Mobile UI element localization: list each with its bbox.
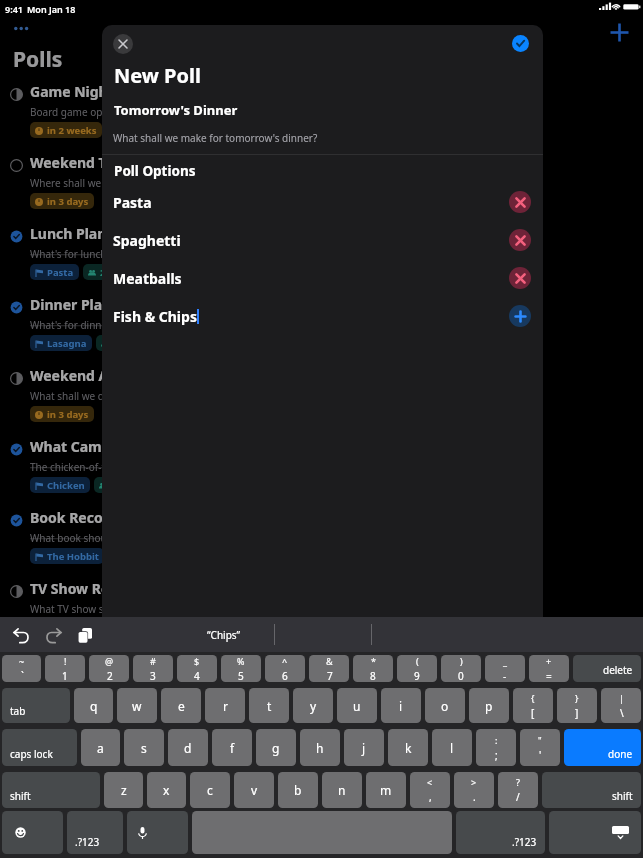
button[interactable]: > <box>454 772 494 808</box>
button[interactable]: .?123 <box>456 811 545 854</box>
button[interactable]: Game Night <box>10 82 170 153</box>
button[interactable]: Remove option <box>509 229 531 251</box>
button[interactable]: < <box>410 772 450 808</box>
button[interactable]: ? <box>498 772 538 808</box>
button[interactable]: % <box>221 655 261 682</box>
button[interactable]: What Came First <box>10 437 170 508</box>
button[interactable]: c <box>190 772 230 808</box>
button[interactable]: * <box>353 655 393 682</box>
staticText: n <box>338 782 346 798</box>
button[interactable]: g <box>256 729 296 766</box>
button[interactable]: TV Show Recommend <box>10 579 170 650</box>
staticText: 9 <box>414 669 420 682</box>
staticText: ! <box>64 655 67 667</box>
button[interactable]: ( <box>397 655 437 682</box>
button[interactable]: Lunch Plans <box>10 224 170 295</box>
button[interactable]: s <box>124 729 164 766</box>
button[interactable]: w <box>117 688 157 723</box>
staticText: Tomorrow's Dinner <box>114 101 238 119</box>
button[interactable]: Remove option <box>509 267 531 289</box>
button[interactable]: Spaghetti <box>102 221 543 259</box>
button[interactable]: h <box>300 729 340 766</box>
button[interactable]: ~ <box>2 655 41 682</box>
staticText: caps lock <box>10 747 53 761</box>
button[interactable]: Dictation <box>127 811 188 854</box>
button[interactable]: tab <box>2 688 70 723</box>
button[interactable]: Pasta <box>102 183 543 221</box>
staticText: Mon Jan 18 <box>27 3 76 15</box>
button[interactable]: k <box>388 729 428 766</box>
button[interactable]: Dinner Plans <box>10 295 170 366</box>
button[interactable]: @ <box>89 655 129 682</box>
button[interactable]: done <box>564 729 641 766</box>
button[interactable]: delete <box>573 655 641 682</box>
button[interactable]: Weekend Activity <box>10 366 170 437</box>
button[interactable]: Remove option <box>509 191 531 213</box>
button[interactable]: Meatballs <box>102 259 543 297</box>
button[interactable]: & <box>309 655 349 682</box>
staticText: g <box>272 740 280 756</box>
button[interactable]: shift <box>542 772 641 808</box>
button[interactable]: .?123 <box>67 811 123 854</box>
button[interactable]: Paste <box>71 621 99 649</box>
staticText: l <box>450 740 454 756</box>
button[interactable]: i <box>381 688 421 723</box>
button[interactable]: Undo <box>7 621 35 649</box>
button[interactable]: q <box>74 688 113 723</box>
button[interactable]: | <box>601 688 641 723</box>
button[interactable]: { <box>513 688 553 723</box>
button[interactable]: v <box>234 772 274 808</box>
button[interactable]: ^ <box>265 655 305 682</box>
button[interactable]: ) <box>441 655 481 682</box>
button[interactable]: Emoji <box>2 811 63 854</box>
staticText: - <box>503 669 507 682</box>
button[interactable]: x <box>147 772 186 808</box>
button[interactable]: Book Recommend <box>10 508 170 579</box>
button[interactable]: e <box>161 688 201 723</box>
button[interactable]: f <box>212 729 252 766</box>
button[interactable]: Fish & Chips <box>102 297 543 335</box>
button[interactable]: # <box>133 655 173 682</box>
button[interactable]: Close <box>113 34 133 54</box>
button[interactable]: ! <box>45 655 85 682</box>
button[interactable]: a <box>81 729 120 766</box>
staticText: Fish & Chips <box>113 307 197 326</box>
staticText: in 3 days <box>47 408 89 421</box>
button[interactable]: Redo <box>39 621 67 649</box>
button[interactable]: New poll <box>604 17 634 47</box>
button[interactable]: r <box>205 688 245 723</box>
staticText: Weekend Trip <box>30 153 150 172</box>
button[interactable]: Add option <box>509 305 531 327</box>
button[interactable]: n <box>322 772 362 808</box>
button[interactable]: b <box>278 772 318 808</box>
button[interactable]: o <box>425 688 465 723</box>
button[interactable]: z <box>104 772 143 808</box>
button[interactable]: _ <box>485 655 525 682</box>
button[interactable]: + <box>529 655 569 682</box>
staticText: x <box>163 782 170 798</box>
button[interactable]: m <box>366 772 406 808</box>
staticText: b <box>294 782 302 798</box>
button[interactable]: : <box>476 729 516 766</box>
button[interactable]: d <box>168 729 208 766</box>
button[interactable]: Confirm <box>512 35 529 52</box>
button[interactable]: Weekend Trip <box>10 153 170 224</box>
button[interactable]: shift <box>2 772 100 808</box>
button[interactable]: caps lock <box>2 729 77 766</box>
staticText: 5 <box>238 669 244 682</box>
button[interactable]: l <box>432 729 472 766</box>
button[interactable]: y <box>293 688 333 723</box>
staticText: What TV show shall <box>30 602 150 616</box>
button[interactable]: u <box>337 688 377 723</box>
button[interactable]: } <box>557 688 597 723</box>
button[interactable]: j <box>344 729 384 766</box>
staticText: . <box>473 790 476 804</box>
button[interactable]: Hide keyboard <box>549 811 641 854</box>
button[interactable]: " <box>520 729 560 766</box>
button[interactable]: t <box>249 688 289 723</box>
staticText: h <box>316 740 324 756</box>
button[interactable]: $ <box>177 655 217 682</box>
button[interactable]: p <box>469 688 509 723</box>
staticText: \ <box>620 706 624 720</box>
